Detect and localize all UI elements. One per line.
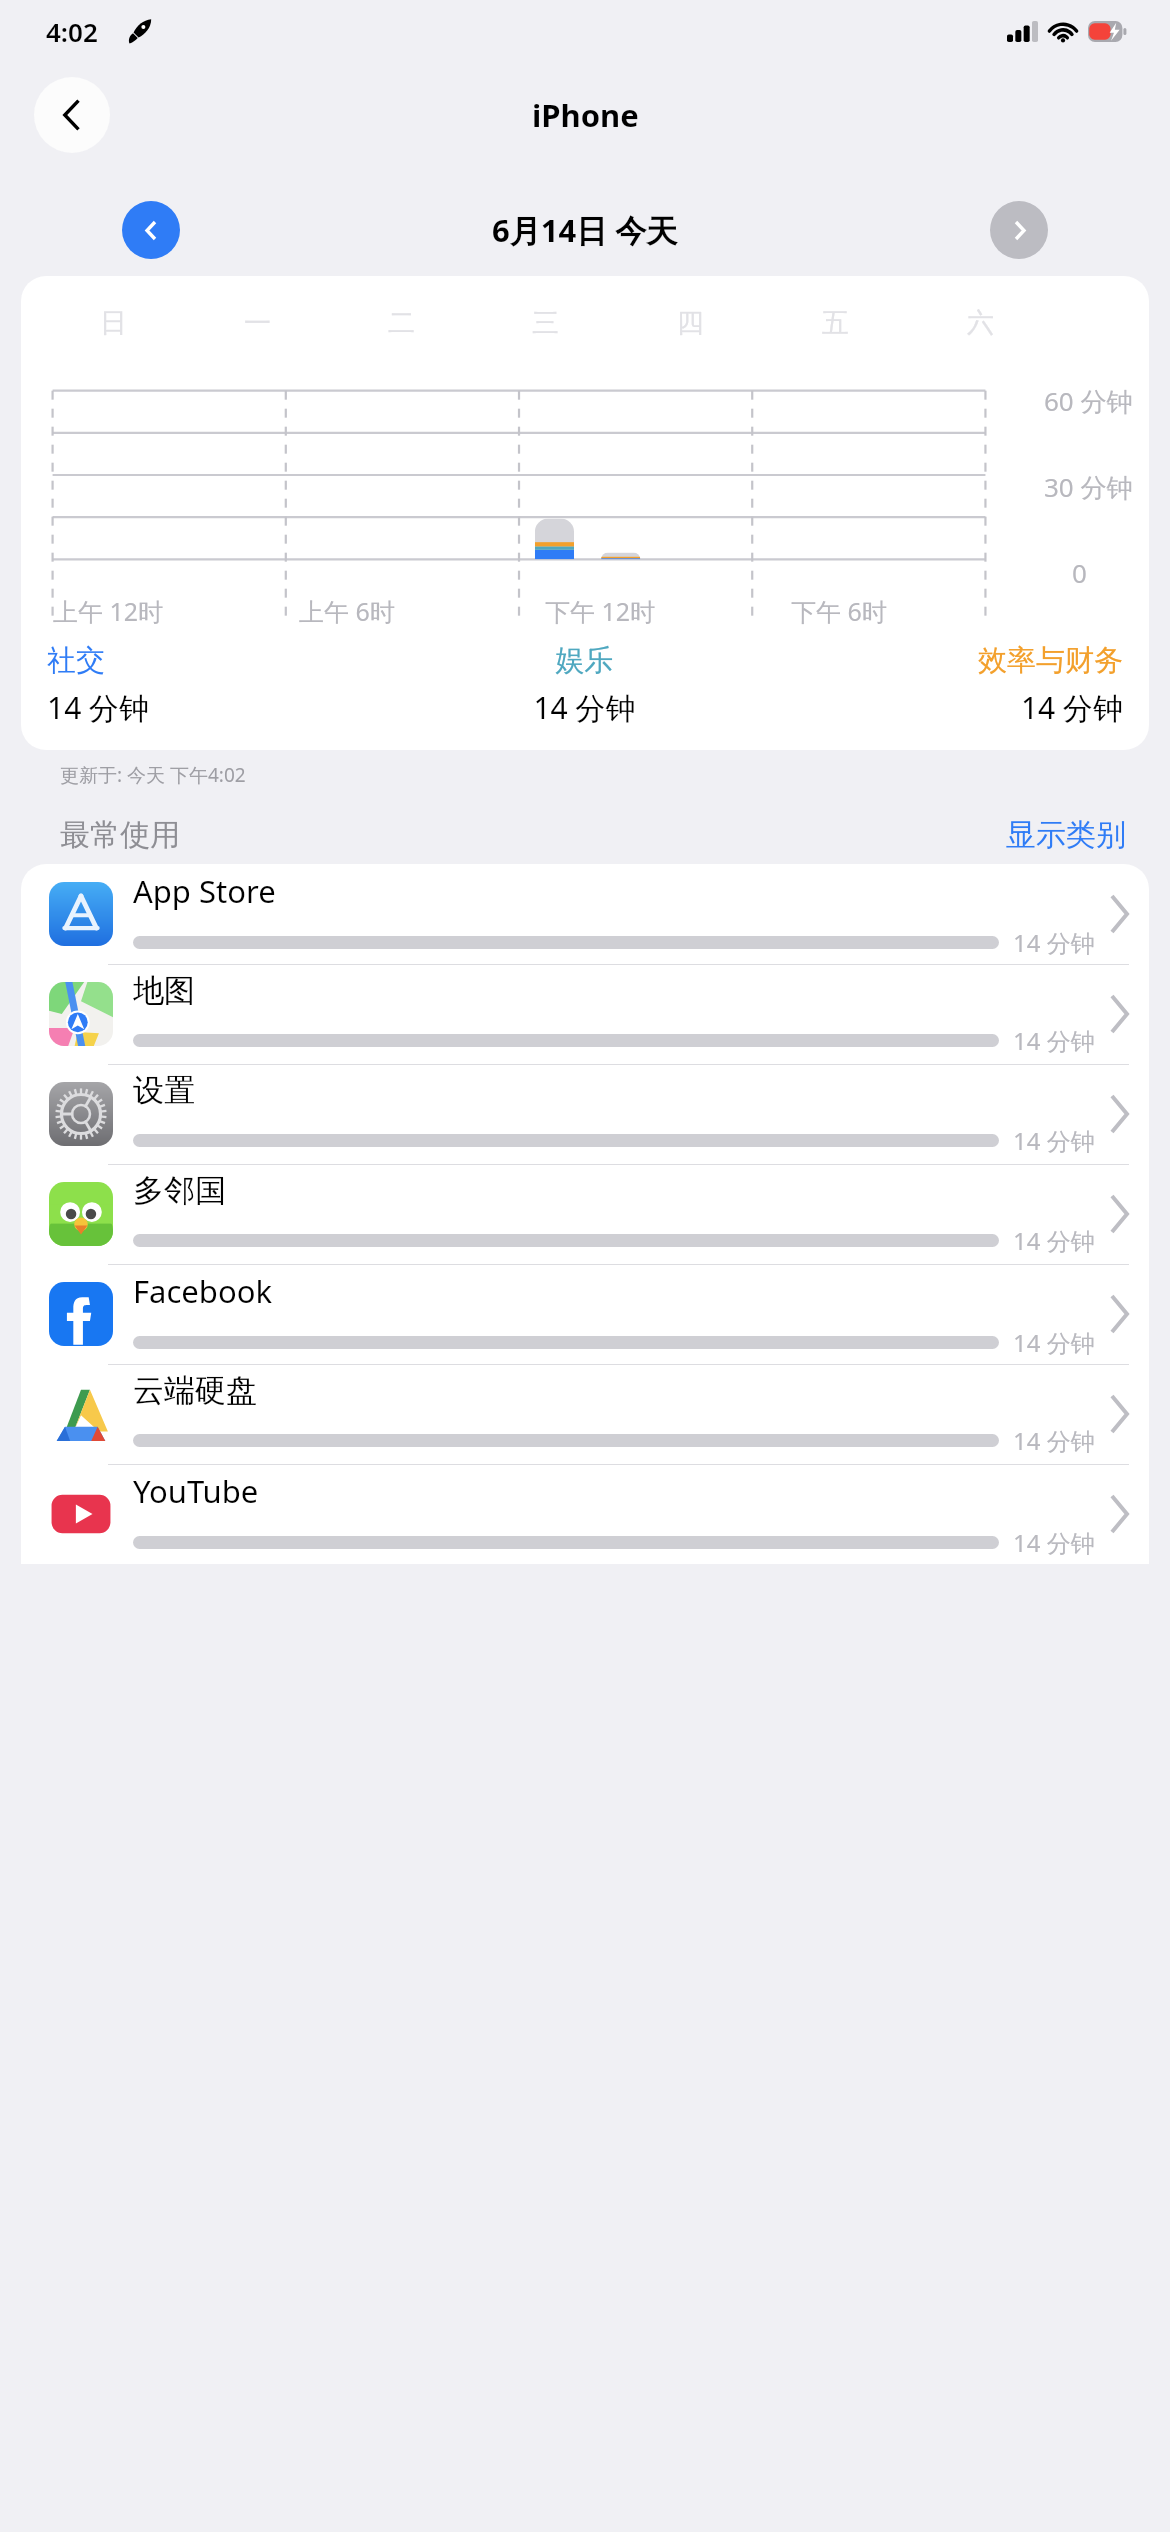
button[interactable]: 地图 [21, 964, 1149, 1064]
staticText: 设置 [133, 1071, 195, 1110]
staticText: 地图 [133, 971, 195, 1010]
staticText: 14 分钟 [1013, 1024, 1095, 1057]
staticText: 最常使用 [60, 816, 180, 854]
staticText: 14 分钟 [1013, 1424, 1095, 1457]
staticText: 娱乐 [405, 642, 764, 679]
staticText: 14 分钟 [1013, 1526, 1095, 1559]
staticText: App Store [133, 870, 276, 912]
staticText: 社交 [47, 642, 405, 679]
staticText: 6月14日 今天 [492, 209, 678, 251]
button[interactable]: Facebook [21, 1264, 1149, 1364]
button[interactable]: 娱乐 [405, 642, 764, 728]
staticText: 上午 12时 [53, 594, 164, 628]
staticText: 60 分钟 [1044, 383, 1133, 419]
staticText: 0 [1072, 555, 1087, 590]
staticText: 多邻国 [133, 1171, 226, 1210]
button[interactable]: 多邻国 [21, 1164, 1149, 1264]
staticText: 14 分钟 [1013, 926, 1095, 959]
staticText: 更新于: 今天 下午4:02 [60, 762, 246, 788]
staticText: 一 [244, 306, 271, 340]
staticText: 二 [388, 306, 415, 340]
staticText: 30 分钟 [1044, 469, 1133, 505]
staticText: 六 [967, 306, 994, 340]
button[interactable]: Next day [990, 201, 1048, 259]
staticText: 五 [822, 306, 849, 340]
button[interactable]: 社交 [47, 642, 405, 728]
staticText: 14 分钟 [764, 687, 1123, 728]
button[interactable]: YouTube [21, 1464, 1149, 1564]
button[interactable]: 显示类别 [1006, 816, 1126, 854]
button[interactable]: Previous day [122, 201, 180, 259]
staticText: 14 分钟 [47, 687, 405, 728]
button[interactable]: 云端硬盘 [21, 1364, 1149, 1464]
button[interactable]: 设置 [21, 1064, 1149, 1164]
staticText: 4:02 [46, 14, 98, 49]
staticText: 14 分钟 [1013, 1124, 1095, 1157]
staticText: Facebook [133, 1270, 272, 1312]
staticText: 14 分钟 [1013, 1224, 1095, 1257]
staticText: 效率与财务 [764, 642, 1123, 679]
staticText: 四 [677, 306, 704, 340]
staticText: 下午 12时 [545, 594, 656, 628]
staticText: 14 分钟 [405, 687, 764, 728]
staticText: 上午 6时 [299, 594, 395, 628]
staticText: YouTube [133, 1470, 259, 1512]
button[interactable]: Back [34, 77, 110, 153]
staticText: 显示类别 [1006, 816, 1126, 854]
staticText: 三 [532, 306, 559, 340]
staticText: 下午 6时 [791, 594, 887, 628]
staticText: 云端硬盘 [133, 1371, 257, 1410]
button[interactable]: App Store [21, 864, 1149, 964]
staticText: 日 [100, 306, 127, 340]
staticText: iPhone [532, 94, 639, 136]
button[interactable]: 效率与财务 [764, 642, 1123, 728]
staticText: 14 分钟 [1013, 1326, 1095, 1359]
